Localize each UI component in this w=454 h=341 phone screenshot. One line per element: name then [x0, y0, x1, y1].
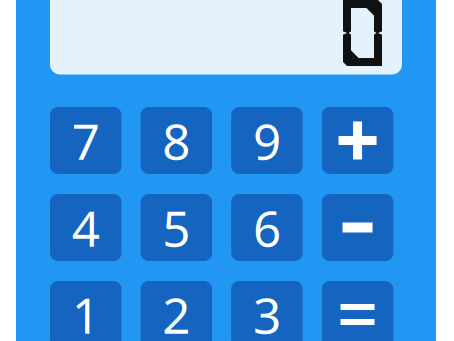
button[interactable]: Subtract [322, 194, 393, 261]
button[interactable]: 4 [50, 194, 121, 261]
staticText: 9 [253, 108, 281, 173]
staticText: 3 [253, 282, 281, 341]
staticText: 4 [72, 195, 100, 260]
button[interactable]: Equals [322, 281, 393, 341]
staticText: 7 [72, 108, 100, 173]
staticText: 1 [72, 282, 100, 341]
staticText: 6 [253, 195, 281, 260]
button[interactable]: 6 [231, 194, 303, 261]
button[interactable]: 7 [50, 107, 121, 174]
button[interactable]: 5 [141, 194, 212, 261]
button[interactable]: 1 [50, 281, 121, 341]
button[interactable]: Add [322, 107, 393, 174]
button[interactable]: 9 [231, 107, 303, 174]
staticText: 8 [162, 108, 190, 173]
button[interactable]: 3 [231, 281, 303, 341]
staticText: 2 [162, 282, 190, 341]
button[interactable]: 8 [141, 107, 212, 174]
staticText: 5 [162, 195, 190, 260]
button[interactable]: 2 [141, 281, 212, 341]
